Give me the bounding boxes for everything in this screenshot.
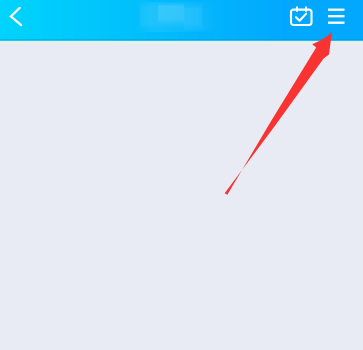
button[interactable]: Tasks [281,0,321,41]
button[interactable]: Back [0,0,34,41]
button[interactable]: Menu [321,0,363,41]
